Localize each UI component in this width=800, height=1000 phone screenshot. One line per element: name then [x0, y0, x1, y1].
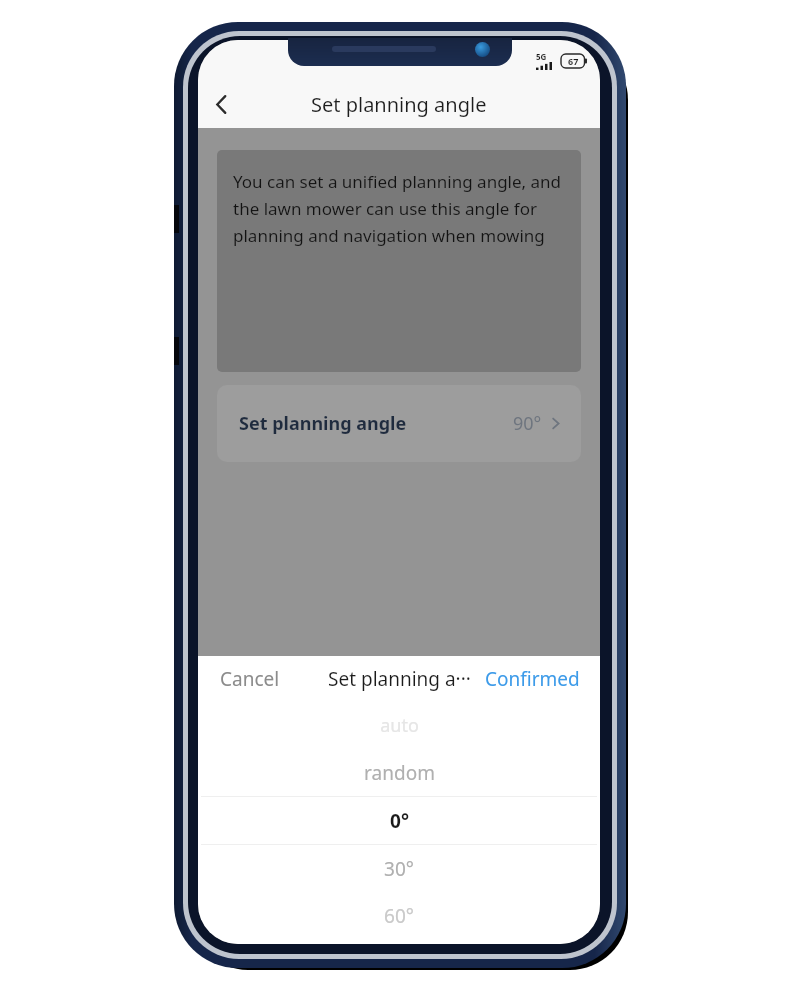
staticText: You can set a unified planning angle, an…: [233, 170, 567, 247]
staticText: auto: [380, 713, 419, 738]
staticText: Set planning a···: [328, 666, 471, 692]
button[interactable]: Back: [198, 81, 244, 127]
staticText: 90°: [513, 411, 542, 436]
button[interactable]: Cancel: [198, 658, 294, 700]
staticText: 5G: [536, 51, 547, 62]
button[interactable]: Confirmed: [471, 658, 600, 700]
staticText: Set planning angle: [311, 91, 487, 118]
staticText: 0°: [390, 808, 409, 834]
staticText: random: [364, 760, 435, 786]
button[interactable]: random: [198, 749, 600, 796]
staticText: Cancel: [220, 666, 280, 692]
staticText: 60°: [384, 903, 414, 929]
button[interactable]: 30°: [198, 845, 600, 892]
staticText: Confirmed: [485, 666, 580, 692]
staticText: 67: [568, 55, 579, 67]
staticText: 30°: [384, 856, 414, 882]
button[interactable]: Set planning angle: [217, 385, 581, 462]
button[interactable]: 60°: [198, 892, 600, 939]
button[interactable]: 0°: [198, 797, 600, 844]
staticText: Set planning angle: [239, 411, 407, 436]
